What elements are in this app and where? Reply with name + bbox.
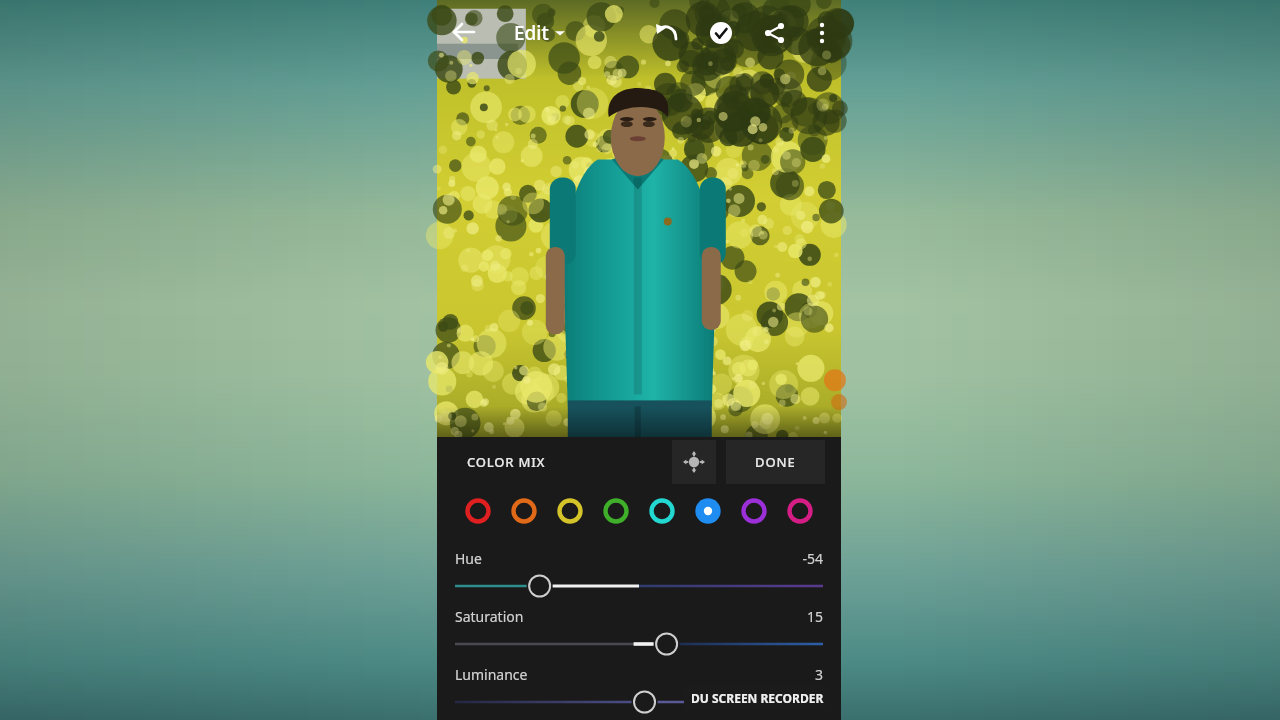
staticText: Saturation — [455, 607, 524, 626]
button[interactable]: Colour channel 6 — [693, 496, 723, 526]
button[interactable]: Colour channel 1 — [463, 496, 493, 526]
button[interactable]: Share — [756, 14, 794, 52]
button[interactable]: Hue — [437, 543, 841, 601]
button[interactable]: More options — [803, 14, 841, 52]
button[interactable]: Back — [445, 13, 483, 51]
staticText: Edit — [514, 20, 549, 46]
button[interactable]: Target select — [672, 440, 716, 484]
staticText: 15 — [806, 607, 823, 626]
staticText: DU SCREEN RECORDER — [691, 690, 824, 706]
button[interactable]: Luminance — [437, 659, 841, 717]
button[interactable]: DONE — [726, 440, 825, 484]
staticText: Luminance — [455, 665, 528, 684]
button[interactable]: Undo — [648, 14, 686, 52]
button[interactable]: Apply — [702, 14, 740, 52]
button[interactable]: Colour channel 5 — [647, 496, 677, 526]
button[interactable]: Saturation — [437, 601, 841, 659]
staticText: DONE — [755, 453, 796, 471]
staticText: -54 — [802, 549, 823, 568]
button[interactable]: Colour channel 8 — [785, 496, 815, 526]
staticText: Hue — [455, 549, 482, 568]
button[interactable]: Colour channel 3 — [555, 496, 585, 526]
button[interactable]: Colour channel 7 — [739, 496, 769, 526]
staticText: 3 — [814, 665, 823, 684]
button[interactable]: Edit — [510, 18, 569, 48]
button[interactable]: Colour channel 2 — [509, 496, 539, 526]
staticText: COLOR MIX — [467, 453, 546, 471]
button[interactable]: Colour channel 4 — [601, 496, 631, 526]
